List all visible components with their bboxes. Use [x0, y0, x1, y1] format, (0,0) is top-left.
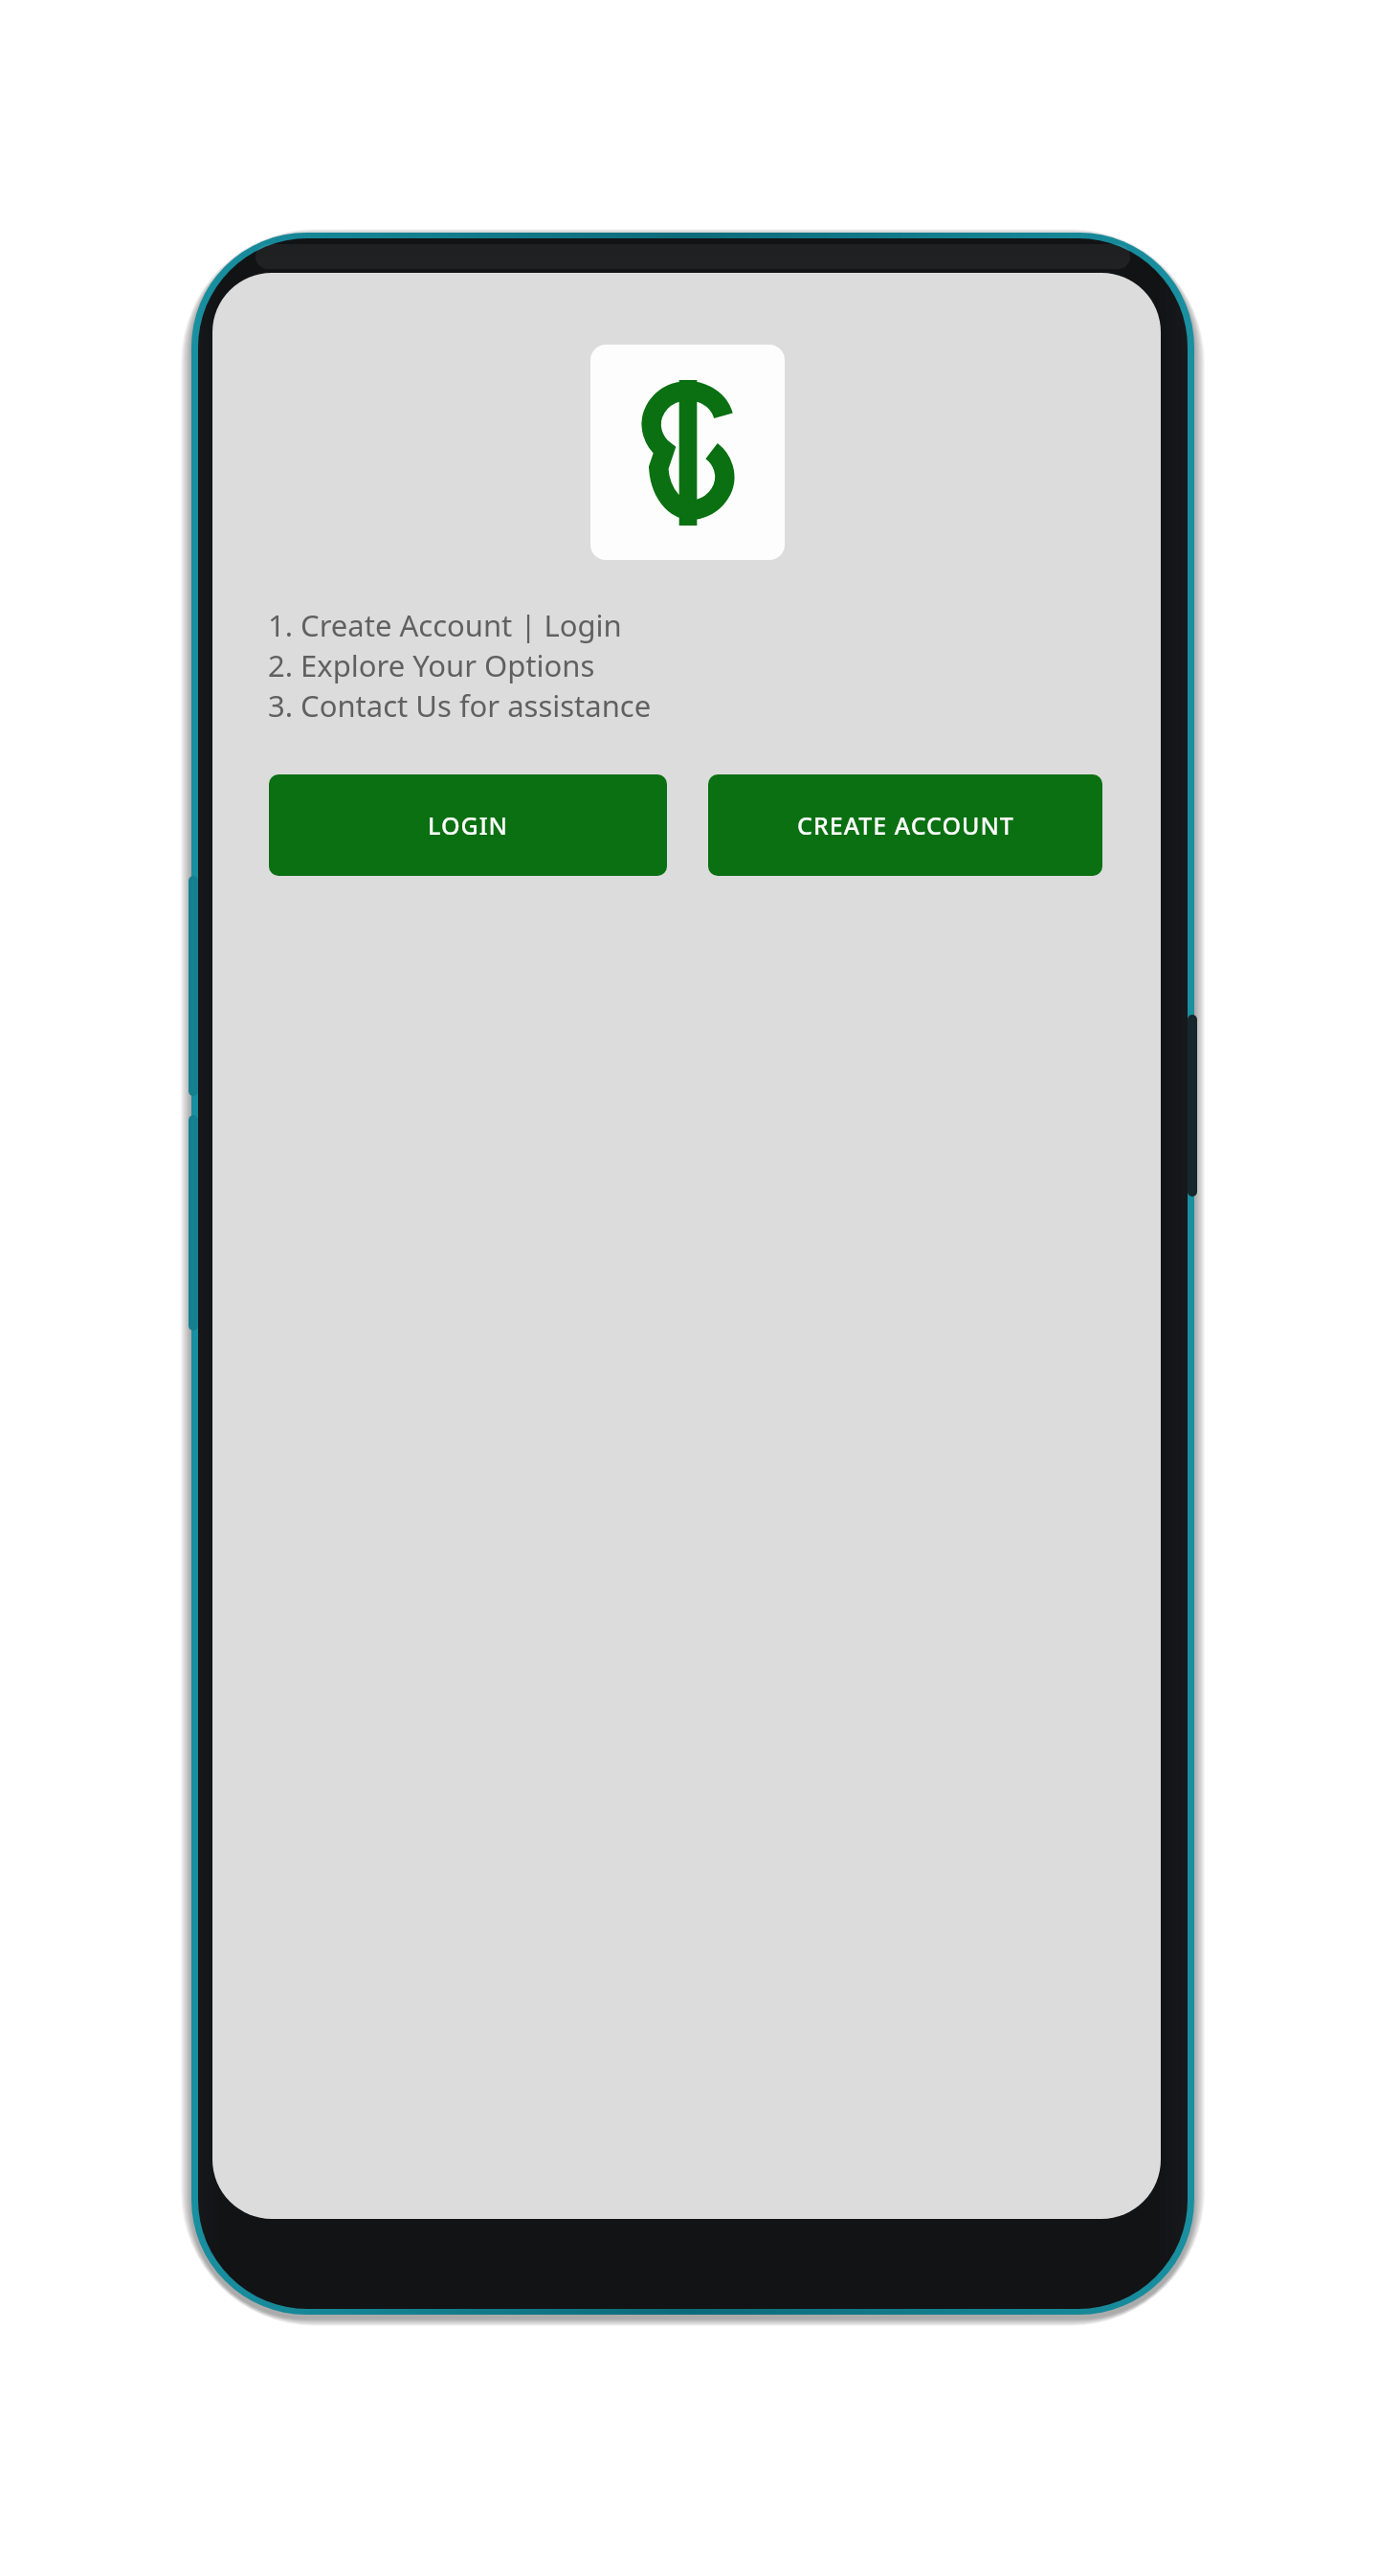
- staticText: 2. Explore Your Options: [268, 645, 595, 685]
- staticText: CREATE ACCOUNT: [797, 809, 1014, 841]
- staticText: 1. Create Account | Login: [268, 605, 622, 645]
- other: App logo, dollar sign: [590, 345, 785, 560]
- staticText: 3. Contact Us for assistance: [268, 685, 652, 726]
- button[interactable]: LOGIN: [269, 774, 667, 876]
- staticText: LOGIN: [428, 809, 508, 841]
- button[interactable]: CREATE ACCOUNT: [708, 774, 1102, 876]
